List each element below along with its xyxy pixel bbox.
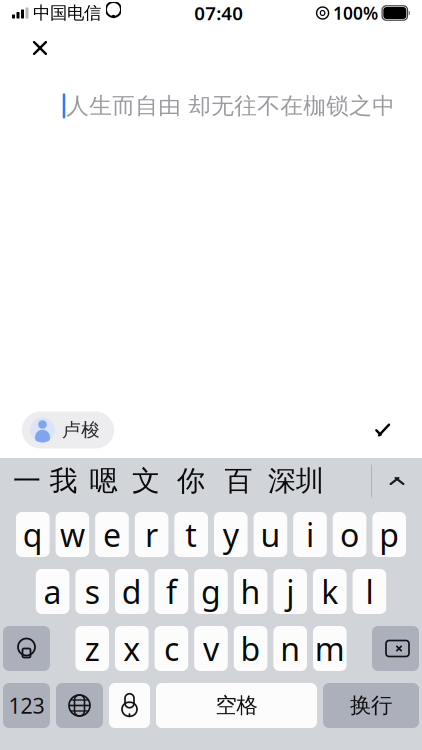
button[interactable]: Close [18,28,62,68]
button[interactable]: i [293,512,327,557]
button[interactable]: g [194,569,228,614]
staticText: j [286,570,294,613]
button[interactable]: Shift [3,626,50,671]
button[interactable]: 空格 [156,683,317,728]
staticText: 文 [132,464,160,498]
staticText: 我 [49,464,77,498]
button[interactable]: o [333,512,366,557]
staticText: m [315,627,345,670]
button[interactable]: 卢梭 [22,411,114,448]
button[interactable]: Confirm [362,412,402,448]
staticText: 深圳 [268,464,324,498]
staticText: q [23,513,43,556]
button[interactable]: Delete [372,626,419,671]
button[interactable]: Switch keyboard [56,683,103,728]
button[interactable]: w [56,512,89,557]
button[interactable]: 文 [124,458,168,504]
staticText: v [203,627,219,670]
staticText: 百 [224,464,252,498]
staticText: z [85,627,100,670]
button[interactable]: l [353,569,386,614]
staticText: c [164,627,179,670]
button[interactable]: 我 [44,458,83,504]
staticText: l [365,570,373,613]
button[interactable]: v [194,626,228,671]
staticText: o [340,513,359,556]
button[interactable]: s [75,569,109,614]
staticText: 你 [177,464,205,498]
button[interactable]: z [75,626,109,671]
staticText: b [241,627,261,670]
button[interactable]: 百 [214,458,263,504]
button[interactable]: n [273,626,307,671]
staticText: 空格 [215,692,257,719]
staticText: e [103,513,121,556]
button[interactable]: k [313,569,347,614]
staticText: p [379,513,399,556]
button[interactable]: m [313,626,347,671]
button[interactable]: 深圳 [263,458,329,504]
staticText: 卢梭 [62,418,100,441]
staticText: h [241,570,261,613]
button[interactable]: r [135,512,168,557]
staticText: 中国电信 [33,2,101,24]
button[interactable]: q [16,512,50,557]
button[interactable]: y [214,512,248,557]
button[interactable]: 你 [168,458,214,504]
button[interactable]: More candidates [372,458,422,504]
staticText: 嗯 [89,464,117,498]
button[interactable]: x [115,626,149,671]
button[interactable]: j [273,569,307,614]
button[interactable]: c [155,626,188,671]
staticText: a [44,570,62,613]
button[interactable]: 换行 [323,683,419,728]
staticText: i [306,513,314,556]
staticText: k [321,570,338,613]
staticText: 07:40 [194,1,243,25]
button[interactable]: 嗯 [83,458,124,504]
staticText: d [122,570,142,613]
button[interactable]: b [234,626,267,671]
button[interactable]: u [254,512,287,557]
button[interactable]: h [234,569,267,614]
staticText: u [260,513,280,556]
staticText: f [166,570,177,613]
button[interactable]: p [372,512,406,557]
button[interactable]: Dictate [109,683,150,728]
staticText: n [280,627,300,670]
staticText: 人生而自由 却无往不在枷锁之中 [66,92,395,120]
staticText: x [123,627,140,670]
button[interactable]: 一 [10,458,44,504]
staticText: s [85,570,100,613]
staticText: 123 [8,691,44,720]
button[interactable]: t [174,512,208,557]
staticText: 一 [13,464,41,498]
staticText: g [201,570,221,613]
button[interactable]: d [115,569,149,614]
staticText: 换行 [350,692,392,719]
button[interactable]: f [155,569,188,614]
staticText: 100% [333,1,378,24]
staticText: y [223,513,239,556]
staticText: w [60,513,85,556]
staticText: t [185,513,197,556]
staticText: r [145,513,158,556]
button[interactable]: 123 [3,683,50,728]
button[interactable]: a [36,569,69,614]
button[interactable]: e [95,512,129,557]
